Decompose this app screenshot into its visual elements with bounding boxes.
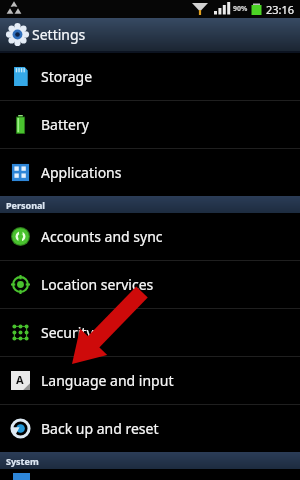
staticText: Settings [32,25,86,44]
staticText: Storage [41,67,93,86]
staticText: Language and input [41,371,174,390]
staticText: Applications [41,163,122,182]
button[interactable]: Storage [0,53,300,100]
button[interactable]: Battery [0,101,300,148]
staticText: Battery [41,115,89,134]
button[interactable]: Location services [0,261,300,308]
button[interactable]: Settings [0,18,300,51]
button[interactable]: Back up and reset [0,405,300,452]
staticText: Security [41,323,94,342]
staticText: 23:16 [266,2,295,17]
staticText: Accounts and sync [41,227,163,246]
staticText: A [16,372,24,387]
staticText: Location services [41,275,154,294]
staticText: Personal [6,199,46,211]
staticText: Back up and reset [41,419,159,438]
button[interactable]: Applications [0,149,300,196]
button[interactable]: Security [0,309,300,356]
staticText: 90% [233,4,248,14]
button[interactable]: A [0,357,300,404]
other: Pointer arrow [0,0,300,480]
staticText: System [6,455,39,467]
button[interactable]: Accounts and sync [0,213,300,260]
